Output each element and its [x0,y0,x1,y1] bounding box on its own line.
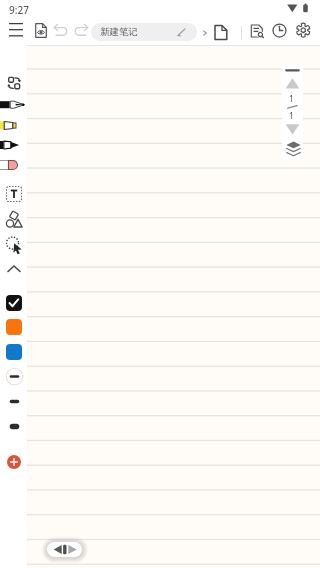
button[interactable]: Marker [0,135,28,155]
button[interactable]: Transform [6,75,22,91]
staticText: 1 [289,93,294,105]
button[interactable]: Redo [72,24,89,37]
button[interactable]: Settings [296,23,311,38]
button[interactable]: Highlighter [0,116,28,135]
button[interactable]: Thin stroke [4,366,25,387]
button[interactable]: Thick stroke [4,416,25,437]
button[interactable]: Medium stroke [4,391,25,412]
button[interactable]: Add colour [7,455,21,469]
button[interactable]: Lasso select [3,234,25,256]
button[interactable]: Layers [286,140,301,157]
button[interactable]: Black colour [6,295,22,311]
button[interactable]: Collapse [4,261,24,277]
button[interactable]: Text tool [4,184,24,204]
button[interactable]: History [272,23,287,38]
staticText: 1 [289,110,294,122]
button[interactable]: Preview [35,23,47,38]
button[interactable]: Fountain pen [0,95,28,115]
button[interactable]: Eraser [0,155,28,175]
button[interactable]: New page [212,22,230,44]
button[interactable]: Shapes [3,209,25,231]
button[interactable]: Search [250,23,264,37]
button[interactable]: Blue colour [6,344,22,360]
button[interactable]: Undo [53,24,70,37]
staticText: 新建笔记 [100,26,138,38]
button[interactable]: Orange colour [6,319,22,335]
button[interactable]: Menu [9,22,23,42]
button[interactable]: Expand [200,26,210,40]
staticText: 9:27 [9,3,29,17]
button[interactable]: 新建笔记 [91,23,197,41]
button[interactable]: Page navigation [47,542,82,557]
